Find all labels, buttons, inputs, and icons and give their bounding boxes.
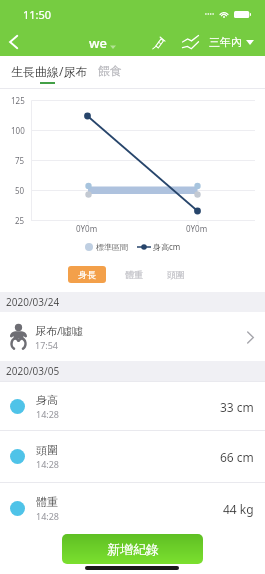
button[interactable]: 三年內 xyxy=(209,35,254,49)
staticText: 2020/03/05 xyxy=(6,364,60,378)
staticText: 2020/03/24 xyxy=(6,295,60,309)
staticText: 頭圍 xyxy=(167,269,185,280)
staticText: 44 kg xyxy=(223,501,254,517)
button[interactable]: 尿布/噓噓 xyxy=(0,312,265,361)
staticText: 身高 xyxy=(36,393,58,407)
staticText: 14:28 xyxy=(36,458,60,470)
staticText: 14:28 xyxy=(36,408,60,420)
button[interactable]: 體重 xyxy=(0,483,265,534)
staticText: 50 xyxy=(15,185,25,196)
staticText: 頭圍 xyxy=(36,443,58,457)
button[interactable]: 體重 xyxy=(116,266,152,283)
button[interactable]: 頭圍 xyxy=(0,431,265,482)
staticText: 生長曲線/尿布 xyxy=(11,63,88,79)
staticText: 新增紀錄 xyxy=(107,541,159,557)
button[interactable]: Growth chart xyxy=(179,31,201,53)
button[interactable]: 身高 xyxy=(0,382,265,430)
staticText: 餵食 xyxy=(98,63,122,78)
staticText: we xyxy=(89,34,107,52)
button[interactable]: Vaccine xyxy=(147,31,169,53)
staticText: 0Y0m xyxy=(76,223,98,234)
staticText: 11:50 xyxy=(23,7,52,22)
staticText: 身高cm xyxy=(153,241,181,252)
button[interactable]: 生長曲線/尿布 xyxy=(4,56,97,89)
staticText: 標準區間 xyxy=(96,242,128,252)
staticText: 身長 xyxy=(78,269,96,280)
staticText: 100 xyxy=(11,125,25,136)
staticText: 33 cm xyxy=(220,399,254,415)
staticText: 尿布/噓噓 xyxy=(35,323,84,338)
staticText: 體重 xyxy=(36,495,58,509)
button[interactable]: 頭圍 xyxy=(158,266,194,283)
staticText: 17:54 xyxy=(35,339,59,351)
staticText: 75 xyxy=(15,155,25,166)
staticText: 體重 xyxy=(125,269,143,280)
button[interactable]: we xyxy=(89,34,116,52)
staticText: 25 xyxy=(15,215,25,226)
staticText: 125 xyxy=(11,95,25,106)
button[interactable]: 餵食 xyxy=(94,56,118,89)
button[interactable]: 身長 xyxy=(68,266,106,283)
button[interactable]: 新增紀錄 xyxy=(62,534,203,564)
staticText: 0Y0m xyxy=(186,223,208,234)
staticText: 三年內 xyxy=(209,35,242,49)
button[interactable]: Back xyxy=(0,29,26,55)
staticText: 14:28 xyxy=(36,510,60,522)
staticText: 66 cm xyxy=(220,449,254,465)
